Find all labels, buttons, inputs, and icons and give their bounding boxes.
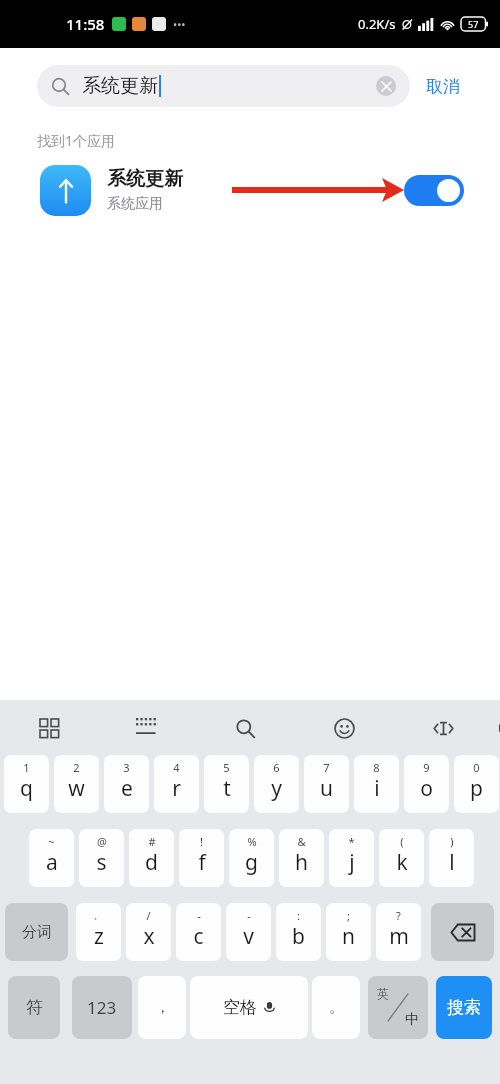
staticText: 系统更新 (82, 74, 158, 98)
staticText: g (245, 848, 258, 877)
staticText: 空格 (223, 997, 257, 1018)
staticText: * (348, 834, 355, 849)
staticText: p (470, 774, 483, 803)
button[interactable]: 空格 (190, 976, 308, 1039)
staticText: % (247, 834, 257, 849)
staticText: ! (200, 834, 203, 849)
button[interactable]: 6 (254, 755, 299, 813)
button[interactable]: / (126, 903, 171, 961)
button[interactable]: 分词 (5, 903, 68, 961)
staticText: 。 (329, 998, 344, 1017)
button[interactable]: ( (379, 829, 424, 887)
button[interactable]: 2 (54, 755, 99, 813)
button[interactable]: 、 (76, 903, 121, 961)
button[interactable]: Clear (376, 76, 396, 96)
staticText: 57 (468, 18, 479, 30)
button[interactable]: & (279, 829, 324, 887)
button[interactable]: 符 (8, 976, 60, 1039)
staticText: t (223, 774, 231, 803)
staticText: x (143, 922, 155, 951)
button[interactable]: * (329, 829, 374, 887)
button[interactable]: Cursor (426, 711, 460, 745)
button[interactable]: Emoji (327, 711, 361, 745)
button[interactable]: 。 (312, 976, 360, 1039)
staticText: z (94, 922, 104, 951)
staticText: 0.2K/s (358, 15, 396, 33)
staticText: - (197, 908, 201, 923)
button[interactable]: Apps (32, 711, 66, 745)
staticText: & (297, 834, 306, 849)
button[interactable]: 取消 (422, 68, 464, 105)
staticText: h (295, 848, 308, 877)
staticText: 5 (223, 760, 230, 775)
button[interactable]: 系统更新 (0, 150, 500, 230)
staticText: 9 (423, 760, 430, 775)
staticText: 系统更新 (107, 167, 183, 191)
button[interactable]: Search (228, 711, 262, 745)
staticText: 搜索 (447, 997, 481, 1018)
button[interactable]: ; (326, 903, 371, 961)
staticText: ) (450, 834, 454, 849)
button[interactable]: ! (179, 829, 224, 887)
staticText: 8 (373, 760, 380, 775)
button[interactable]: 3 (104, 755, 149, 813)
staticText: l (449, 848, 455, 877)
staticText: 符 (26, 997, 43, 1018)
staticText: ( (400, 834, 404, 849)
staticText: q (20, 774, 33, 803)
button[interactable]: - (176, 903, 221, 961)
button[interactable]: # (129, 829, 174, 887)
button[interactable]: ， (138, 976, 186, 1039)
staticText: 中 (405, 1011, 419, 1029)
button[interactable]: ) (429, 829, 474, 887)
button[interactable]: Keyboard (129, 711, 163, 745)
button[interactable]: Backspace (431, 903, 494, 961)
button[interactable]: 搜索 (436, 976, 492, 1039)
staticText: i (374, 774, 380, 803)
staticText: b (292, 922, 305, 951)
button[interactable]: 9 (404, 755, 449, 813)
button[interactable]: ? (376, 903, 421, 961)
button[interactable]: 5 (204, 755, 249, 813)
staticText: k (396, 848, 408, 877)
staticText: / (146, 908, 151, 923)
button[interactable]: 7 (304, 755, 349, 813)
button[interactable]: 系统更新 (37, 65, 410, 107)
staticText: ， (155, 998, 170, 1017)
button[interactable]: Toggle (404, 175, 464, 206)
button[interactable]: ~ (29, 829, 74, 887)
staticText: 11:58 (66, 14, 105, 34)
staticText: - (247, 908, 251, 923)
button[interactable]: 1 (4, 755, 49, 813)
button[interactable]: 4 (154, 755, 199, 813)
staticText: y (271, 774, 282, 803)
button[interactable]: - (226, 903, 271, 961)
button[interactable]: % (229, 829, 274, 887)
staticText: w (68, 774, 85, 803)
staticText: s (96, 848, 107, 877)
staticText: 0 (473, 760, 480, 775)
button[interactable]: 8 (354, 755, 399, 813)
staticText: # (148, 834, 156, 849)
staticText: ; (347, 908, 350, 923)
button[interactable]: 123 (72, 976, 132, 1039)
staticText: d (145, 848, 158, 877)
staticText: r (172, 774, 181, 803)
button[interactable]: : (276, 903, 321, 961)
staticText: 取消 (426, 76, 460, 97)
button[interactable]: @ (79, 829, 124, 887)
staticText: 3 (123, 760, 130, 775)
staticText: j (349, 848, 355, 877)
button[interactable]: 0 (454, 755, 499, 813)
staticText: ? (396, 908, 401, 923)
staticText: 找到1个应用 (37, 131, 116, 150)
staticText: 1 (23, 760, 30, 775)
staticText: o (420, 774, 433, 803)
button[interactable]: 英 (368, 976, 428, 1039)
staticText: c (193, 922, 204, 951)
staticText: m (389, 922, 409, 951)
staticText: 系统应用 (107, 195, 163, 213)
staticText: v (243, 922, 254, 951)
staticText: @ (97, 834, 107, 849)
staticText: 4 (173, 760, 180, 775)
